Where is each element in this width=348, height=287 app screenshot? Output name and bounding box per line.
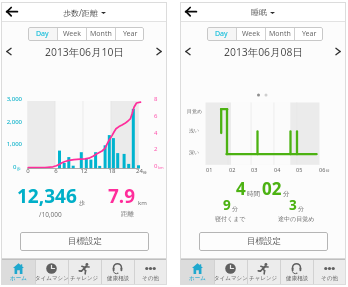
button[interactable]: Back	[2, 2, 22, 22]
button[interactable]: Next day	[330, 44, 346, 59]
staticText: 0	[8, 167, 48, 175]
staticText: 途中の目覚め	[278, 215, 315, 223]
button[interactable]: ホーム	[1, 260, 35, 285]
staticText: 06	[319, 166, 326, 173]
staticText: Month	[269, 29, 291, 39]
staticText: 7.9	[108, 183, 136, 209]
staticText: /10,000	[39, 210, 62, 219]
staticText: Week	[242, 29, 261, 39]
staticText: 02	[262, 177, 282, 200]
staticText: 18	[92, 167, 132, 175]
button[interactable]: ホーム	[180, 260, 214, 285]
button[interactable]: Day	[207, 27, 236, 41]
staticText: タイムマシン	[214, 275, 247, 282]
staticText: 目標設定	[68, 236, 102, 247]
staticText: 6	[154, 112, 158, 120]
button[interactable]: Next day	[151, 44, 167, 59]
button[interactable]: その他	[134, 260, 167, 285]
button[interactable]: その他	[313, 260, 346, 285]
button[interactable]: Week	[237, 27, 265, 41]
button[interactable]: 健康相談	[280, 260, 313, 285]
staticText: 1,000	[0, 140, 22, 148]
button[interactable]: 目標設定	[20, 232, 149, 251]
staticText: 4	[154, 129, 158, 137]
button[interactable]: タイムマシン	[214, 260, 247, 285]
staticText: 03	[251, 166, 258, 173]
staticText: 9	[223, 196, 231, 214]
staticText: 時間	[247, 190, 260, 198]
staticText: タイムマシン	[35, 275, 68, 282]
staticText: ホーム	[189, 275, 206, 282]
staticText: 距離	[121, 210, 134, 218]
staticText: 分	[232, 205, 238, 213]
button[interactable]: Back	[181, 2, 201, 22]
staticText: 寝付くまで	[215, 215, 246, 223]
staticText: 2013年06月10日	[45, 45, 124, 59]
button[interactable]: Week	[58, 27, 86, 41]
staticText: 8	[154, 95, 158, 103]
staticText: 深い	[189, 149, 200, 155]
staticText: 歩	[17, 166, 21, 171]
button[interactable]: チャレンジ	[68, 260, 101, 285]
staticText: Month	[90, 29, 112, 39]
button[interactable]: Month	[87, 27, 115, 41]
staticText: Day	[36, 29, 49, 39]
staticText: 歩数/距離	[63, 7, 98, 18]
staticText: Year	[123, 29, 138, 39]
staticText: 健康相談	[107, 275, 129, 282]
staticText: 歩	[79, 199, 85, 207]
staticText: Year	[302, 29, 317, 39]
staticText: 02	[229, 166, 236, 173]
button[interactable]: Month	[266, 27, 294, 41]
staticText: km	[138, 199, 147, 207]
button[interactable]: Day	[28, 27, 57, 41]
staticText: 目標設定	[247, 236, 281, 247]
staticText: 2	[154, 145, 158, 153]
button[interactable]: Year	[295, 27, 323, 41]
staticText: 浅い	[189, 127, 200, 133]
staticText: 健康相談	[286, 275, 308, 282]
staticText: 4	[236, 177, 246, 200]
staticText: 3,000	[0, 95, 22, 103]
staticText: 12	[64, 167, 104, 175]
button[interactable]: タイムマシン	[35, 260, 68, 285]
staticText: km	[158, 165, 164, 170]
staticText: 24	[136, 167, 143, 175]
staticText: Week	[63, 29, 82, 39]
button[interactable]: Previous day	[180, 44, 196, 59]
staticText: 04	[274, 166, 281, 173]
staticText: 2,000	[0, 118, 22, 126]
staticText: ホーム	[10, 275, 27, 282]
staticText: 分	[283, 190, 290, 198]
staticText: 05	[296, 166, 303, 173]
staticText: 12,346	[17, 183, 77, 209]
button[interactable]: 健康相談	[101, 260, 134, 285]
staticText: 3	[289, 196, 297, 214]
staticText: 時	[326, 169, 330, 173]
staticText: その他	[142, 275, 159, 282]
staticText: チャレンジ	[70, 275, 99, 282]
staticText: 0	[13, 163, 17, 171]
staticText: 0	[154, 162, 158, 170]
staticText: Day	[215, 29, 228, 39]
staticText: 目覚め	[187, 108, 203, 114]
staticText: 時	[143, 170, 147, 175]
staticText: 2013年06月08日	[224, 45, 303, 59]
staticText: 6	[36, 167, 76, 175]
staticText: その他	[321, 275, 338, 282]
staticText: 分	[298, 205, 304, 213]
staticText: 睡眠	[251, 7, 267, 17]
button[interactable]: Year	[116, 27, 144, 41]
staticText: チャレンジ	[249, 275, 278, 282]
button[interactable]: 目標設定	[199, 232, 328, 251]
button[interactable]: Previous day	[1, 44, 17, 59]
button[interactable]: チャレンジ	[247, 260, 280, 285]
staticText: 01	[206, 166, 213, 173]
